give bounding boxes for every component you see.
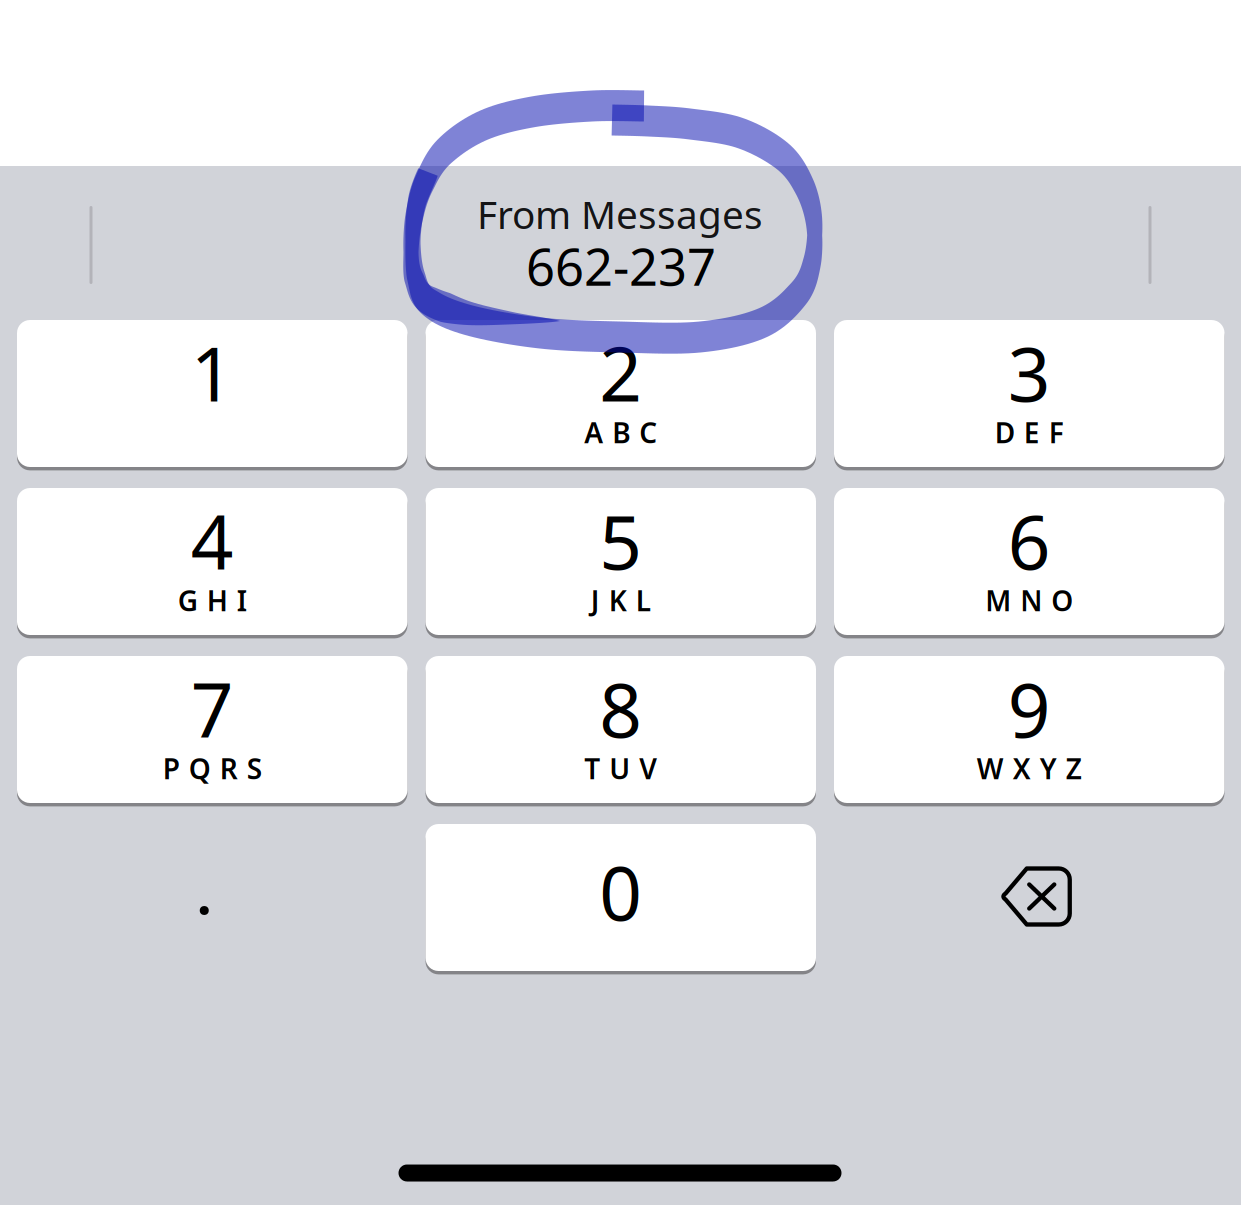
- staticText: MNO: [985, 582, 1073, 619]
- staticText: 2: [599, 323, 642, 422]
- staticText: 8: [599, 659, 642, 758]
- staticText: 6: [1008, 491, 1051, 590]
- staticText: WXYZ: [977, 750, 1082, 787]
- staticText: GHI: [178, 582, 247, 619]
- button[interactable]: 0: [425, 824, 816, 971]
- staticText: 9: [1008, 659, 1051, 758]
- staticText: JKL: [591, 582, 651, 619]
- staticText: 7: [191, 659, 234, 758]
- button[interactable]: Pause: [17, 824, 407, 971]
- button[interactable]: 1: [17, 320, 407, 467]
- staticText: DEF: [995, 414, 1064, 451]
- staticText: 5: [599, 491, 642, 590]
- button[interactable]: 2: [425, 320, 816, 467]
- button[interactable]: 6: [834, 488, 1224, 635]
- button[interactable]: 9: [834, 656, 1224, 803]
- staticText: From Messages: [477, 188, 763, 240]
- staticText: 3: [1008, 323, 1051, 422]
- button[interactable]: 4: [17, 488, 407, 635]
- button[interactable]: Delete: [834, 824, 1224, 971]
- staticText: 662-237: [526, 232, 716, 300]
- staticText: PQRS: [163, 750, 262, 787]
- staticText: 4: [191, 491, 234, 590]
- button[interactable]: 8: [425, 656, 816, 803]
- button[interactable]: 3: [834, 320, 1224, 467]
- staticText: 1: [191, 323, 234, 422]
- button[interactable]: 5: [425, 488, 816, 635]
- button[interactable]: 7: [17, 656, 407, 803]
- staticText: TUV: [584, 750, 657, 787]
- staticText: ABC: [584, 414, 657, 451]
- staticText: 0: [599, 842, 642, 941]
